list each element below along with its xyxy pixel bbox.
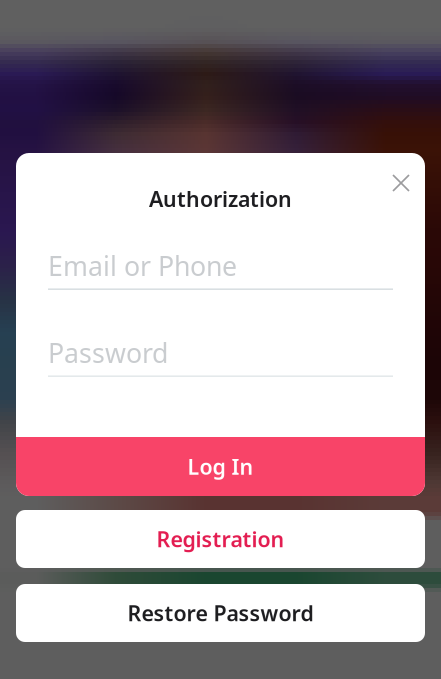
staticText: Authorization <box>149 185 292 213</box>
staticText: Restore Password <box>127 599 313 627</box>
button[interactable]: Restore Password <box>16 584 425 642</box>
staticText: Registration <box>156 525 284 553</box>
staticText: Email or Phone <box>48 248 237 283</box>
button[interactable]: Close <box>382 164 420 202</box>
button[interactable]: Log In <box>16 437 425 496</box>
staticText: Log In <box>187 452 253 481</box>
button[interactable]: Registration <box>16 510 425 568</box>
staticText: Password <box>48 335 168 370</box>
